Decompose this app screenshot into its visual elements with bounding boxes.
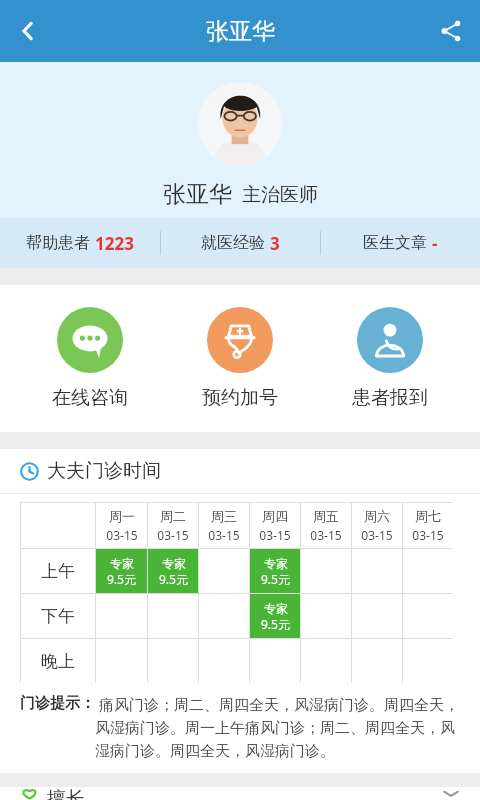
staticText: 擅长 xyxy=(47,787,85,800)
staticText: 周一 xyxy=(109,508,135,524)
staticText: 1223 xyxy=(95,232,134,255)
staticText: 专家 xyxy=(162,556,186,571)
staticText: - xyxy=(432,232,438,255)
button[interactable]: 帮助患者 xyxy=(0,218,160,268)
staticText: 专家 xyxy=(110,556,134,571)
button[interactable]: 专家 xyxy=(148,549,198,593)
staticText: 张亚华 xyxy=(206,17,275,46)
staticText: 03-15 xyxy=(310,527,342,543)
staticText: 周二 xyxy=(160,508,186,524)
staticText: 03-15 xyxy=(361,527,393,543)
staticText: 医生文章 xyxy=(363,233,427,253)
staticText: 9.5元 xyxy=(261,616,290,632)
staticText: 周三 xyxy=(211,508,237,524)
staticText: 9.5元 xyxy=(261,571,290,587)
staticText: 3 xyxy=(270,232,280,255)
staticText: 就医经验 xyxy=(201,233,265,253)
button[interactable]: 专家 xyxy=(250,594,300,638)
button[interactable]: 就医经验 xyxy=(161,218,320,268)
staticText: 03-15 xyxy=(259,527,291,543)
staticText: 患者报到 xyxy=(352,386,428,410)
staticText: 周四 xyxy=(262,508,288,524)
button[interactable]: 专家 xyxy=(96,549,147,593)
staticText: 周五 xyxy=(313,508,339,524)
button[interactable]: 医生文章 xyxy=(321,218,480,268)
staticText: 张亚华 xyxy=(163,180,232,209)
button[interactable]: Share xyxy=(422,0,480,62)
staticText: 9.5元 xyxy=(107,571,136,587)
staticText: 下午 xyxy=(41,606,75,627)
staticText: 03-15 xyxy=(412,527,444,543)
button[interactable]: 擅长 xyxy=(0,787,480,800)
staticText: 03-15 xyxy=(157,527,189,543)
staticText: 周七 xyxy=(415,508,441,524)
staticText: 专家 xyxy=(264,601,288,616)
button[interactable]: 预约加号 xyxy=(180,307,300,410)
staticText: 痛风门诊；周二、周四全天，风湿病门诊。周四全天，风湿病门诊。周一上午痛风门诊；周… xyxy=(95,694,462,761)
staticText: 帮助患者 xyxy=(26,233,90,253)
staticText: 门诊提示： xyxy=(20,694,95,713)
staticText: 大夫门诊时间 xyxy=(47,459,161,483)
staticText: 周六 xyxy=(364,508,390,524)
staticText: 在线咨询 xyxy=(52,386,128,410)
staticText: 上午 xyxy=(41,561,75,582)
button[interactable]: 患者报到 xyxy=(330,307,450,410)
button[interactable]: Back xyxy=(0,0,56,62)
staticText: 晚上 xyxy=(41,651,75,672)
button[interactable]: 专家 xyxy=(250,549,300,593)
staticText: 主治医师 xyxy=(242,183,318,207)
staticText: 03-15 xyxy=(208,527,240,543)
staticText: 专家 xyxy=(264,556,288,571)
staticText: 9.5元 xyxy=(159,571,188,587)
staticText: 预约加号 xyxy=(202,386,278,410)
button[interactable]: 在线咨询 xyxy=(30,307,150,410)
staticText: 03-15 xyxy=(106,527,138,543)
